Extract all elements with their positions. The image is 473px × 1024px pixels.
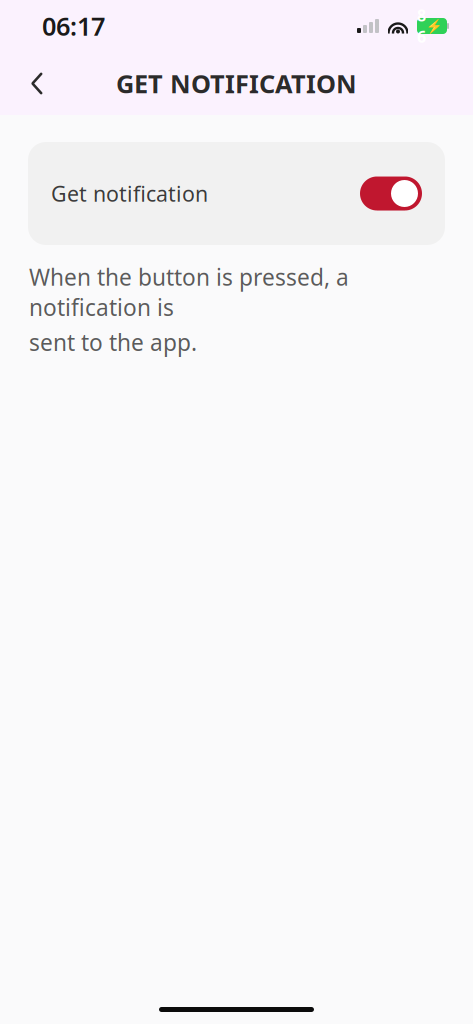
staticText: GET NOTIFICATION [116, 67, 357, 100]
button[interactable]: Get notification [28, 142, 445, 245]
staticText: When the button is pressed, a notificati… [29, 262, 349, 322]
button[interactable]: Back [12, 58, 62, 108]
staticText: 06:17 [42, 9, 105, 43]
staticText: 86 [417, 5, 426, 47]
staticText: ⚡ [426, 18, 443, 34]
staticText: Get notification [51, 179, 208, 208]
staticText: sent to the app. [29, 327, 197, 357]
